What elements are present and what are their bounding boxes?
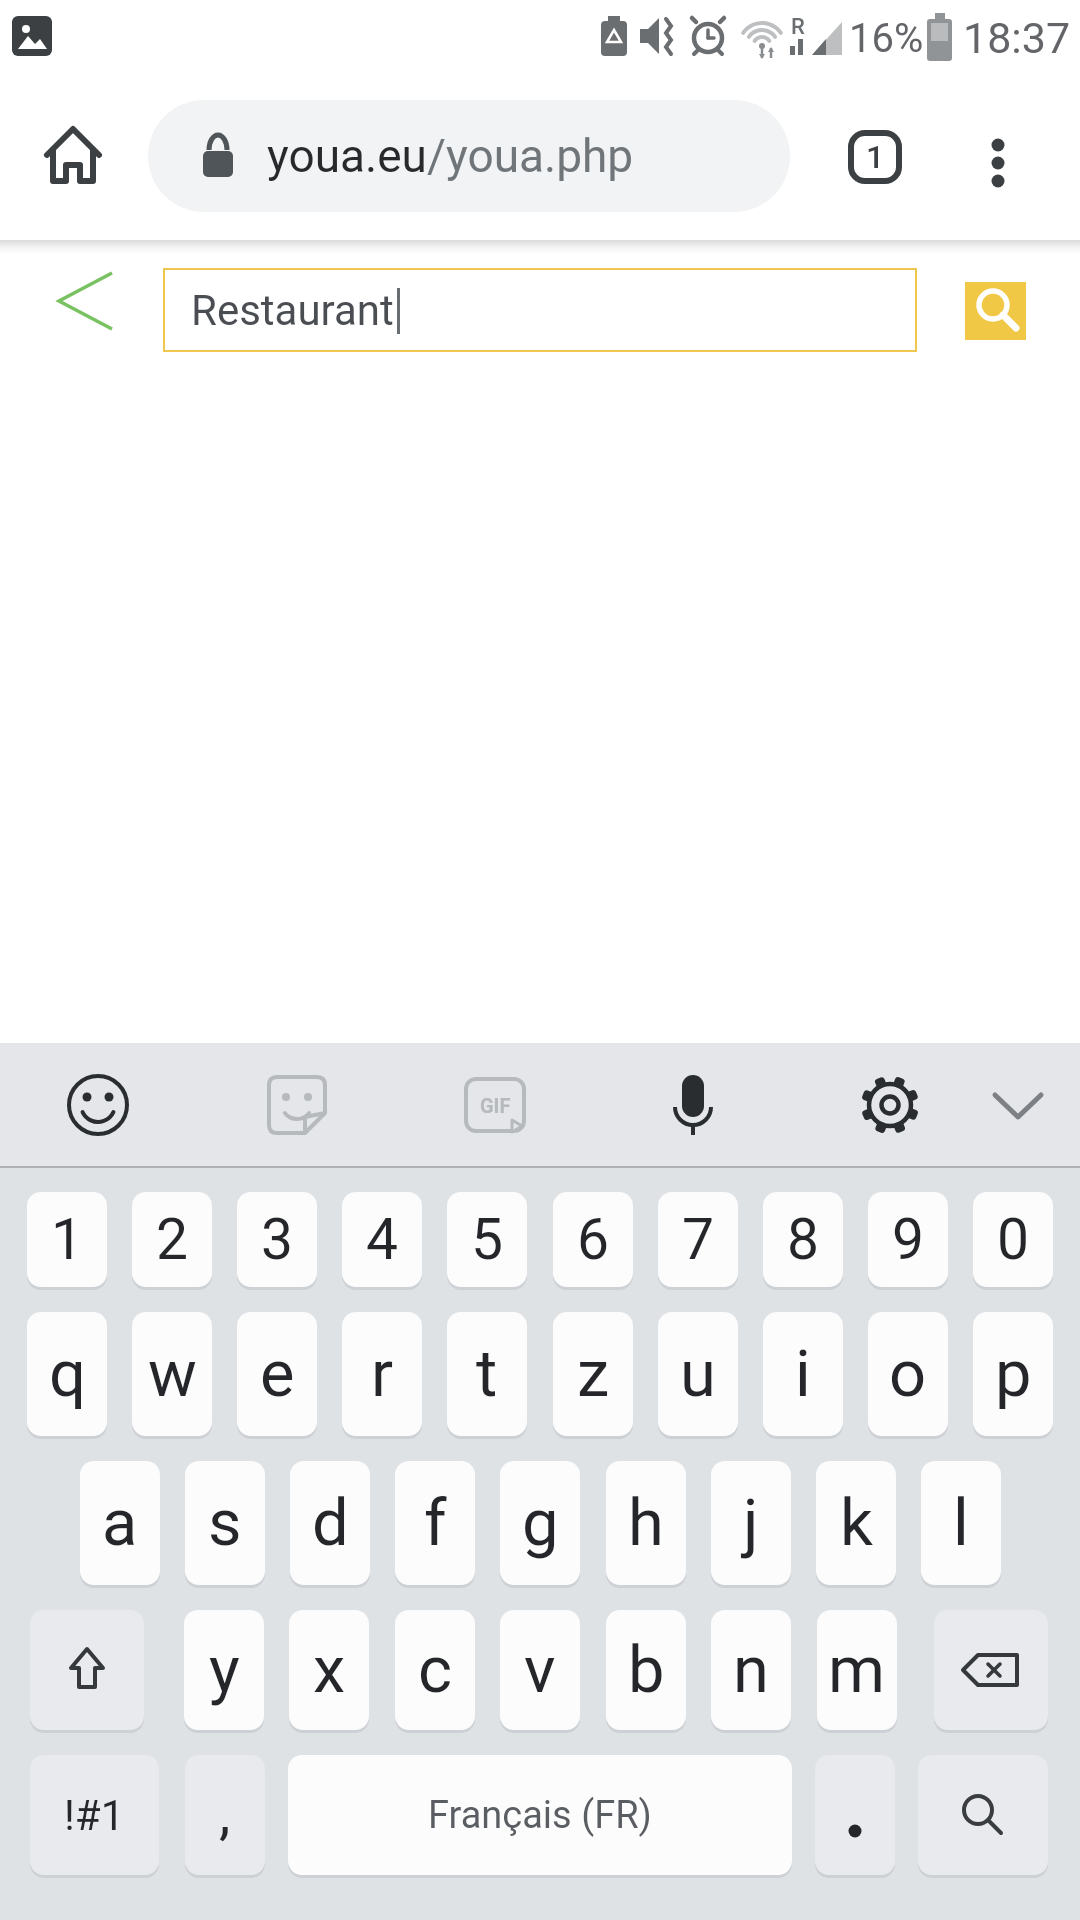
button[interactable]: f (395, 1461, 475, 1585)
button[interactable]: n (711, 1610, 791, 1730)
button[interactable] (918, 1755, 1048, 1875)
staticText: c (418, 1632, 453, 1708)
staticText: w (148, 1336, 197, 1412)
staticText: k (840, 1485, 873, 1561)
button[interactable]: j (711, 1461, 791, 1585)
staticText: f (424, 1485, 447, 1561)
staticText: d (312, 1485, 349, 1561)
button[interactable]: c (395, 1610, 475, 1730)
button[interactable]: a (80, 1461, 160, 1585)
button[interactable] (815, 1755, 895, 1875)
button[interactable]: r (342, 1312, 422, 1436)
staticText: s (208, 1485, 242, 1561)
staticText: u (680, 1336, 716, 1412)
staticText: 18:37 (963, 13, 1071, 63)
staticText: Restaurant (191, 286, 394, 335)
button[interactable]: e (237, 1312, 317, 1436)
button[interactable]: w (132, 1312, 212, 1436)
staticText: g (522, 1485, 559, 1561)
button[interactable]: 4 (342, 1192, 422, 1287)
staticText: R (791, 14, 805, 38)
staticText: l (953, 1485, 969, 1561)
button[interactable]: o (868, 1312, 948, 1436)
staticText: e (260, 1336, 295, 1412)
button[interactable]: 8 (763, 1192, 843, 1287)
staticText: h (628, 1485, 664, 1561)
button[interactable]: 1 (27, 1192, 107, 1287)
button[interactable]: p (973, 1312, 1053, 1436)
staticText: 6 (577, 1206, 610, 1273)
button[interactable]: !#1 (30, 1755, 159, 1875)
staticText: 2 (156, 1206, 189, 1273)
button[interactable]: Français (FR) (288, 1755, 792, 1875)
staticText: v (524, 1632, 556, 1708)
staticText: z (577, 1336, 610, 1412)
staticText: 8 (787, 1206, 820, 1273)
staticText: n (733, 1632, 769, 1708)
button[interactable]: y (184, 1610, 264, 1730)
button[interactable]: , (185, 1755, 265, 1875)
staticText: m (828, 1632, 886, 1708)
staticText: 16% (849, 15, 924, 62)
staticText: 3 (261, 1206, 294, 1273)
staticText: 9 (892, 1206, 925, 1273)
button[interactable]: l (921, 1461, 1001, 1585)
staticText: 1 (866, 138, 885, 176)
button[interactable]: u (658, 1312, 738, 1436)
staticText: x (313, 1632, 346, 1708)
button[interactable]: 9 (868, 1192, 948, 1287)
staticText: 1 (51, 1206, 84, 1273)
staticText: /youa.php (427, 129, 634, 183)
staticText: 7 (682, 1206, 715, 1273)
staticText: 5 (471, 1206, 504, 1273)
button[interactable]: 5 (447, 1192, 527, 1287)
button[interactable]: d (290, 1461, 370, 1585)
staticText: j (743, 1485, 759, 1561)
button[interactable]: 0 (973, 1192, 1053, 1287)
button[interactable]: 7 (658, 1192, 738, 1287)
button[interactable]: k (816, 1461, 896, 1585)
button[interactable]: q (27, 1312, 107, 1436)
button[interactable] (850, 1065, 930, 1145)
button[interactable]: z (553, 1312, 633, 1436)
button[interactable]: GIF (455, 1065, 535, 1145)
button[interactable] (653, 1065, 733, 1145)
button[interactable]: s (185, 1461, 265, 1585)
staticText: !#1 (64, 1791, 125, 1840)
button[interactable]: m (817, 1610, 897, 1730)
staticText: youa.eu (267, 129, 427, 183)
staticText: GIF (480, 1094, 511, 1117)
staticText: r (371, 1336, 394, 1412)
button[interactable]: i (763, 1312, 843, 1436)
staticText: i (795, 1336, 811, 1412)
button[interactable] (934, 1610, 1048, 1730)
staticText: o (889, 1336, 927, 1412)
button[interactable] (965, 282, 1026, 340)
button[interactable]: h (606, 1461, 686, 1585)
button[interactable]: Restaurant (163, 268, 917, 352)
button[interactable]: t (447, 1312, 527, 1436)
button[interactable]: youa.eu (148, 100, 790, 212)
button[interactable] (257, 1065, 337, 1145)
button[interactable] (40, 258, 130, 344)
button[interactable]: 1 (830, 112, 920, 202)
staticText: t (476, 1336, 498, 1412)
staticText: q (49, 1336, 86, 1412)
button[interactable] (980, 1068, 1056, 1144)
button[interactable]: v (500, 1610, 580, 1730)
button[interactable] (28, 110, 118, 200)
button[interactable]: x (289, 1610, 369, 1730)
staticText: p (995, 1336, 1032, 1412)
button[interactable]: 3 (237, 1192, 317, 1287)
staticText: b (628, 1632, 665, 1708)
staticText: 4 (366, 1206, 399, 1273)
staticText: 0 (997, 1206, 1030, 1273)
button[interactable]: 2 (132, 1192, 212, 1287)
button[interactable]: 6 (553, 1192, 633, 1287)
button[interactable] (960, 112, 1036, 202)
button[interactable] (58, 1065, 138, 1145)
staticText: a (102, 1485, 138, 1561)
button[interactable] (30, 1610, 144, 1730)
button[interactable]: b (606, 1610, 686, 1730)
button[interactable]: g (500, 1461, 580, 1585)
